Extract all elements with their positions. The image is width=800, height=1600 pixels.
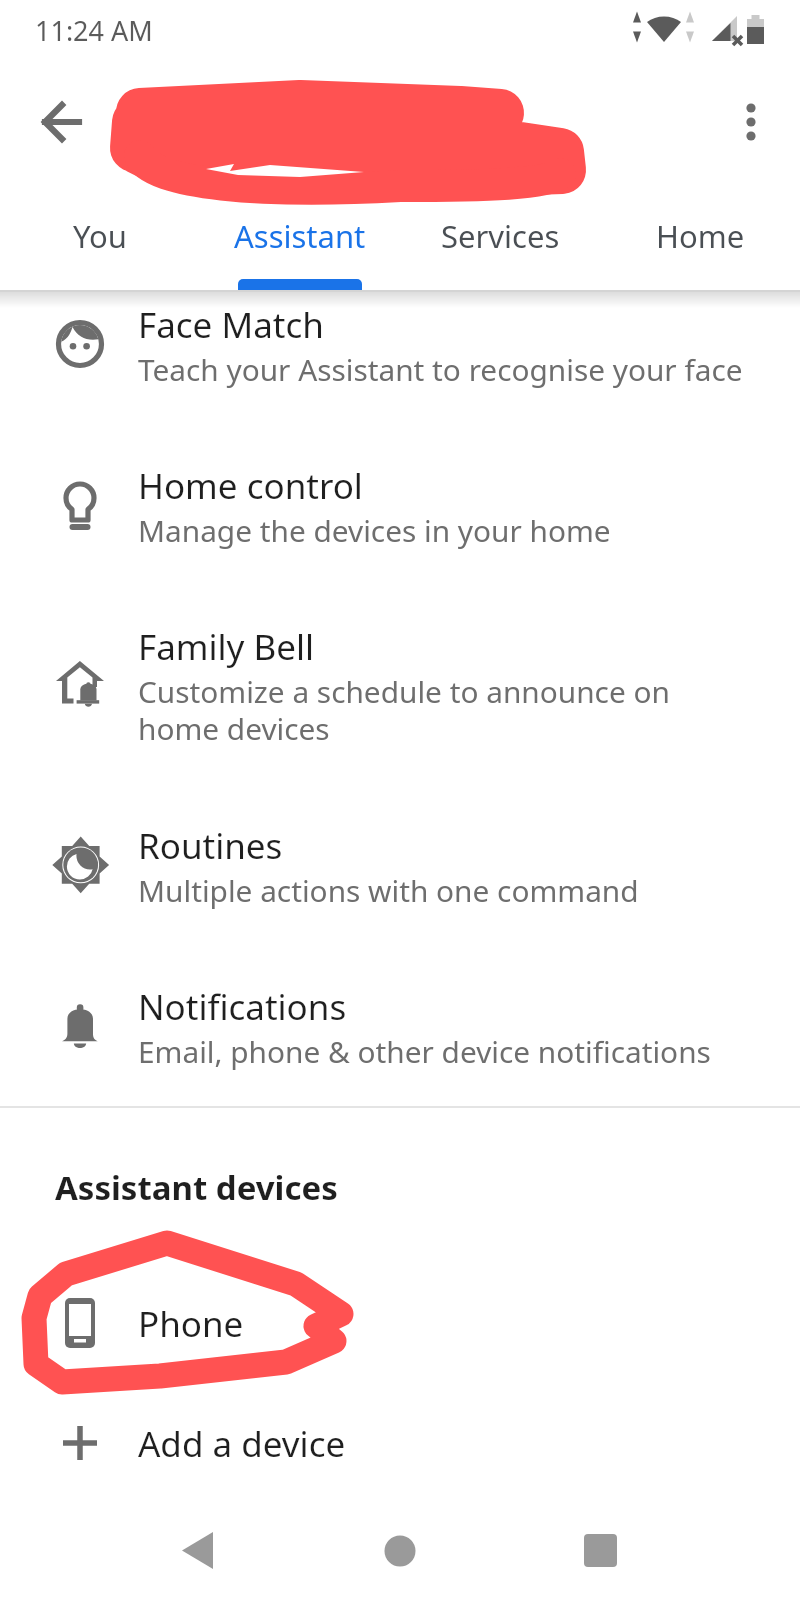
staticText: Notifications [138,983,347,1031]
staticText: Teach your Assistant to recognise your f… [138,349,743,390]
button[interactable]: Notifications [0,963,800,1123]
staticText: 11:24 AM [35,12,153,49]
staticText: Phone [138,1300,244,1348]
staticText: Add a device [138,1420,346,1468]
staticText: Customize a schedule to announce on home… [138,671,670,749]
staticText: Home control [138,462,363,510]
staticText: Family Bell [138,623,315,671]
button[interactable]: Home control [0,442,800,602]
staticText: Routines [138,822,283,870]
staticText: Home [656,215,745,257]
button[interactable]: Assistant [200,198,400,290]
staticText: Face Match [138,301,324,349]
staticText: Manage the devices in your home [138,510,611,551]
button[interactable]: Home [600,198,800,290]
button[interactable]: Back [160,1515,240,1587]
staticText: Email, phone & other device notification… [138,1031,711,1072]
button[interactable]: Add a device [0,1396,800,1506]
button[interactable]: Phone [0,1276,800,1386]
button[interactable]: Back [26,86,98,158]
staticText: Multiple actions with one command [138,870,639,911]
button[interactable]: Family Bell [0,603,800,801]
button[interactable]: You [0,198,200,290]
staticText: Assistant [234,215,366,257]
staticText: Services [441,215,560,257]
button[interactable]: Routines [0,802,800,962]
staticText: Assistant devices [55,1165,338,1210]
button[interactable]: More options [715,86,787,158]
button[interactable]: Face Match [0,281,800,441]
button[interactable]: Services [400,198,600,290]
button[interactable]: Recent apps [560,1515,640,1587]
staticText: You [73,215,127,257]
button[interactable]: Home [360,1515,440,1587]
